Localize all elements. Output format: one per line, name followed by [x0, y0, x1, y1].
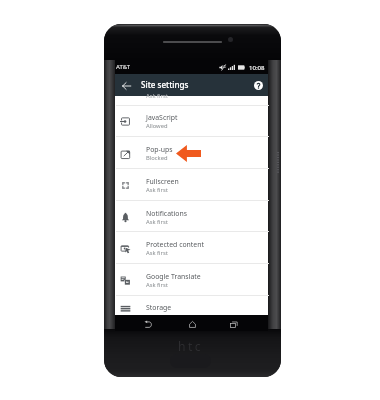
- button[interactable]: Ask first: [115, 96, 268, 105]
- staticText: Allowed: [146, 122, 168, 130]
- button[interactable]: Google Translate: [115, 264, 268, 295]
- staticText: AT&T: [116, 63, 130, 71]
- staticText: Protected content: [146, 240, 204, 249]
- staticText: Ask first: [146, 249, 168, 257]
- staticText: JavaScript: [146, 113, 178, 122]
- button[interactable]: Storage: [115, 296, 268, 318]
- staticText: Ask first: [146, 92, 168, 100]
- staticText: Ask first: [146, 186, 168, 194]
- button[interactable]: Back: [142, 318, 154, 330]
- staticText: Storage: [146, 303, 172, 312]
- staticText: Fullscreen: [146, 177, 179, 186]
- staticText: Notifications: [146, 209, 187, 218]
- button[interactable]: Fullscreen: [115, 169, 268, 200]
- staticText: Pop-ups: [146, 145, 173, 154]
- staticText: htc: [178, 338, 203, 355]
- staticText: 10:08: [249, 63, 265, 71]
- button[interactable]: JavaScript: [115, 105, 268, 136]
- button[interactable]: Pop-ups: [115, 137, 268, 168]
- staticText: Ask first: [146, 281, 168, 289]
- button[interactable]: Help and feedback: [250, 77, 266, 93]
- staticText: Google Translate: [146, 272, 201, 281]
- button[interactable]: Recent apps: [228, 318, 240, 330]
- staticText: Ask first: [146, 218, 168, 226]
- button[interactable]: Navigate up: [118, 77, 135, 94]
- staticText: Site settings: [141, 79, 189, 90]
- button[interactable]: Protected content: [115, 232, 268, 263]
- staticText: Blocked: [146, 154, 168, 162]
- button[interactable]: Notifications: [115, 201, 268, 232]
- button[interactable]: Home: [186, 318, 198, 330]
